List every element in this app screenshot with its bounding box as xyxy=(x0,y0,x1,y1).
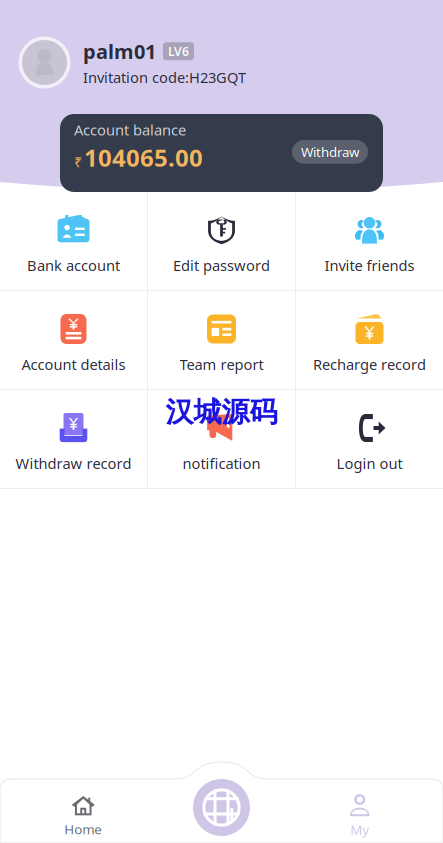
button[interactable]: My xyxy=(276,773,443,838)
staticText: Withdraw xyxy=(301,143,359,161)
button[interactable]: Bank account xyxy=(0,192,147,290)
staticText: Account balance xyxy=(74,120,186,139)
staticText: Withdraw record xyxy=(15,453,131,473)
staticText: 104065.00 xyxy=(84,141,203,173)
button[interactable]: Account details xyxy=(0,291,147,389)
staticText: Recharge record xyxy=(313,354,426,374)
button[interactable]: Withdraw xyxy=(292,140,368,164)
staticText: Bank account xyxy=(27,255,120,275)
staticText: Team report xyxy=(179,354,263,374)
staticText: Edit password xyxy=(173,255,270,275)
staticText: 汉城源码 xyxy=(165,395,277,429)
button[interactable]: Withdraw record xyxy=(0,390,147,488)
staticText: Invitation code:H23GQT xyxy=(83,67,246,87)
button[interactable]: Invite friends xyxy=(296,192,443,290)
staticText: Login out xyxy=(336,453,402,473)
staticText: My xyxy=(350,821,369,838)
staticText: LV6 xyxy=(168,43,189,59)
staticText: Home xyxy=(64,820,102,838)
staticText: Account details xyxy=(21,354,125,374)
button[interactable]: Edit password xyxy=(148,192,295,290)
staticText: palm01 xyxy=(83,38,156,65)
button[interactable]: Team report xyxy=(148,291,295,389)
button[interactable]: Browse xyxy=(193,779,250,836)
button[interactable]: Home xyxy=(0,773,166,838)
staticText: ₹ xyxy=(74,152,82,171)
staticText: notification xyxy=(182,453,260,473)
staticText: Invite friends xyxy=(324,255,414,275)
button[interactable]: notification xyxy=(148,390,295,488)
button[interactable]: Login out xyxy=(296,390,443,488)
button[interactable]: Recharge record xyxy=(296,291,443,389)
